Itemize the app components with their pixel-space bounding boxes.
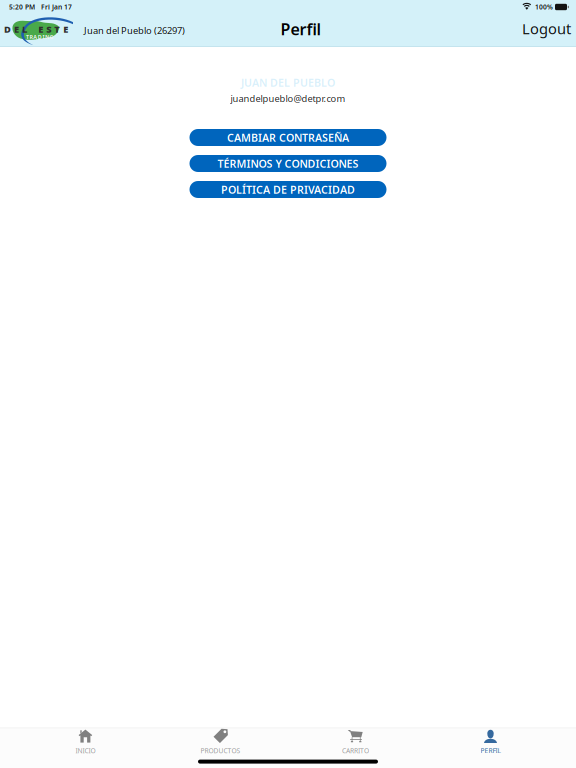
staticText: Perfil (280, 18, 321, 40)
staticText: E (14, 23, 19, 35)
staticText: TÉRMINOS Y CONDICIONES (217, 156, 358, 171)
staticText: D (38, 33, 42, 41)
staticText: E (38, 23, 43, 35)
button[interactable]: D (8, 13, 185, 47)
staticText: I (42, 33, 44, 41)
staticText: T (54, 23, 60, 35)
staticText: S (46, 23, 51, 35)
button[interactable]: TÉRMINOS Y CONDICIONES (189, 155, 386, 172)
staticText: 5:20 PM (9, 3, 35, 11)
staticText: Fri Jan 17 (41, 3, 72, 11)
staticText: L (22, 23, 27, 35)
staticText: 100% (535, 3, 553, 11)
staticText: E (63, 23, 68, 35)
staticText: R (30, 33, 33, 41)
staticText: G (50, 33, 54, 41)
staticText: N (45, 33, 49, 41)
button[interactable]: PRODUCTOS (153, 732, 288, 753)
staticText: D (4, 23, 11, 35)
staticText: PRODUCTOS (200, 746, 240, 755)
staticText: POLÍTICA DE PRIVACIDAD (221, 182, 355, 197)
button[interactable]: CARRITO (288, 732, 423, 753)
button[interactable]: POLÍTICA DE PRIVACIDAD (189, 181, 386, 198)
button[interactable]: CAMBIAR CONTRASEÑA (189, 129, 386, 146)
staticText: INICIO (75, 746, 95, 755)
staticText: CARRITO (342, 746, 369, 755)
staticText: CAMBIAR CONTRASEÑA (227, 130, 349, 145)
button[interactable]: INICIO (18, 732, 153, 753)
staticText: Logout (522, 19, 571, 38)
button[interactable]: Logout (522, 21, 571, 40)
staticText: JUAN DEL PUEBLO (241, 75, 335, 90)
staticText: Juan del Pueblo (26297) (84, 24, 185, 37)
staticText: T (26, 33, 29, 41)
staticText: A (33, 33, 37, 41)
staticText: PERFIL (480, 746, 500, 755)
button[interactable]: PERFIL (423, 732, 558, 753)
staticText: juandelpueblo@detpr.com (230, 92, 345, 105)
